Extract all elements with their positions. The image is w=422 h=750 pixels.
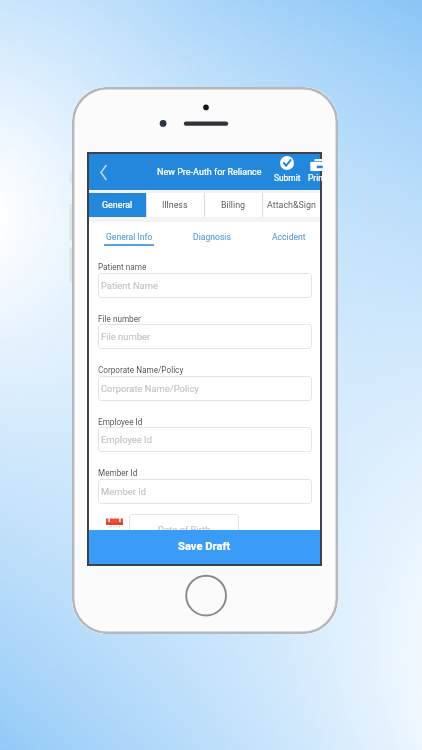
staticText: New Pre-Auth for Reliance <box>157 167 262 178</box>
button[interactable]: Accident <box>255 232 323 250</box>
button[interactable]: General Info <box>95 232 163 250</box>
button[interactable]: General <box>89 193 146 217</box>
button[interactable]: Illness <box>146 193 204 217</box>
button[interactable]: Print <box>300 154 334 190</box>
staticText: Patient name <box>98 262 147 272</box>
button[interactable]: Member Id <box>98 479 312 504</box>
staticText: Corporate Name/Policy <box>98 365 184 375</box>
staticText: Employee Id <box>101 434 152 445</box>
staticText: Attach&Sign <box>267 200 316 210</box>
button[interactable]: Attach&Sign <box>262 193 320 217</box>
staticText: Member Id <box>98 468 138 478</box>
staticText: File number <box>101 331 151 342</box>
button[interactable]: Back <box>93 162 114 183</box>
button[interactable]: Diagnosis <box>178 232 246 250</box>
staticText: Diagnosis <box>193 232 231 242</box>
staticText: Patient Name <box>101 280 158 291</box>
staticText: Billing <box>221 200 246 210</box>
staticText: Corporate Name/Policy <box>101 383 199 394</box>
button[interactable]: Corporate Name/Policy <box>98 376 312 401</box>
staticText: Print <box>308 173 326 183</box>
staticText: Save Draft <box>178 540 231 553</box>
staticText: Accident <box>272 232 306 242</box>
button[interactable]: Save Draft <box>89 530 320 564</box>
staticText: Illness <box>162 200 188 210</box>
staticText: Submit <box>274 173 301 183</box>
button[interactable]: Submit <box>270 154 304 190</box>
button[interactable]: Date of Birth <box>129 514 239 539</box>
staticText: File number <box>98 314 141 324</box>
staticText: Member Id <box>101 486 147 497</box>
button[interactable]: File number <box>98 324 312 349</box>
staticText: Employee Id <box>98 417 143 427</box>
staticText: Date of Birth <box>158 524 211 535</box>
button[interactable]: Employee Id <box>98 427 312 452</box>
button[interactable]: Patient Name <box>98 273 312 298</box>
button[interactable]: Billing <box>204 193 262 217</box>
staticText: General Info <box>106 232 153 242</box>
staticText: General <box>102 200 133 210</box>
